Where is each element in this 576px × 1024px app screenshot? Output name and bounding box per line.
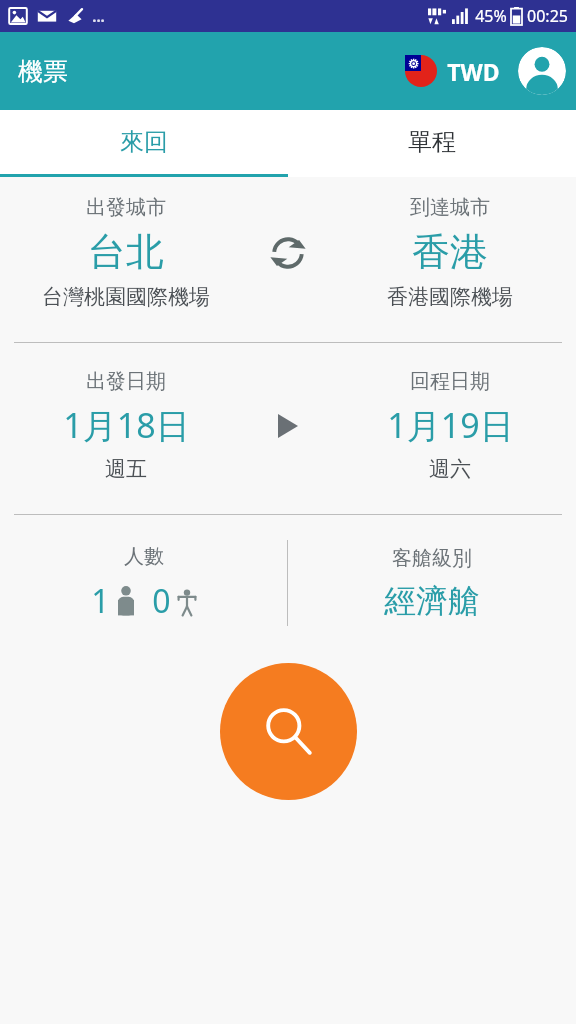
staticText: 經濟艙 — [384, 581, 480, 621]
button[interactable]: 客艙級別 — [288, 546, 576, 621]
staticText: 香港 — [412, 228, 488, 276]
staticText: 週五 — [105, 456, 147, 482]
button[interactable]: 出發日期 — [0, 365, 252, 486]
staticText: 45% — [475, 5, 507, 27]
button[interactable]: Search flights — [220, 663, 357, 800]
staticText: 00:25 — [527, 5, 568, 27]
staticText: 來回 — [120, 127, 168, 157]
staticText: 1月18日 — [63, 402, 190, 448]
staticText: 出發日期 — [86, 369, 166, 394]
staticText: TWD — [447, 56, 500, 87]
button[interactable]: 出發城市 — [0, 191, 252, 314]
button[interactable]: Account — [518, 47, 566, 95]
staticText: 0 — [152, 579, 171, 623]
staticText: 1月19日 — [387, 402, 514, 448]
staticText: 客艙級別 — [392, 546, 472, 571]
staticText: 回程日期 — [410, 369, 490, 394]
button[interactable]: 來回 — [0, 110, 288, 174]
staticText: 台灣桃園國際機場 — [42, 284, 210, 310]
staticText: 人數 — [124, 544, 164, 569]
staticText: 台北 — [88, 228, 164, 276]
button[interactable]: 回程日期 — [324, 365, 576, 486]
staticText: 週六 — [429, 456, 471, 482]
staticText: 到達城市 — [410, 195, 490, 220]
staticText: 出發城市 — [86, 195, 166, 220]
staticText: ... — [92, 6, 105, 26]
button[interactable]: 人數 — [0, 544, 287, 623]
staticText: 1 — [91, 579, 110, 623]
staticText: 機票 — [18, 56, 68, 87]
button[interactable]: Swap cities — [252, 217, 324, 289]
button[interactable]: 單程 — [288, 110, 576, 174]
staticText: 單程 — [408, 127, 456, 157]
button[interactable]: 到達城市 — [324, 191, 576, 314]
staticText: 香港國際機場 — [387, 284, 513, 310]
button[interactable]: TWD — [401, 51, 504, 91]
